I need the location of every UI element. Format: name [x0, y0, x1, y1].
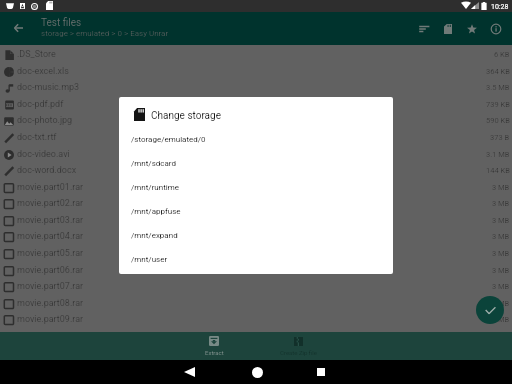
staticText: movie.part05.rar — [17, 248, 84, 259]
staticText: movie.part01.rar — [17, 182, 84, 193]
staticText: doc-video.avi — [17, 149, 70, 160]
staticText: 739 KB — [486, 100, 510, 109]
staticText: Create Zip file — [280, 349, 317, 356]
button[interactable]: Back — [177, 360, 201, 384]
button[interactable]: Extract — [172, 332, 256, 360]
staticText: 3 MB — [492, 282, 510, 291]
staticText: /mnt/user — [131, 255, 168, 264]
button[interactable]: .DS_Store — [0, 46, 512, 63]
staticText: /mnt/expand — [131, 231, 178, 240]
button[interactable]: doc-excel.xls — [0, 63, 512, 80]
staticText: 3.1 MB — [486, 150, 510, 159]
button[interactable]: movie.part02.rar — [0, 195, 512, 212]
staticText: 3 MB — [492, 199, 510, 208]
button[interactable]: Home — [245, 360, 269, 384]
staticText: movie.part07.rar — [17, 281, 84, 292]
button[interactable]: movie.part04.rar — [0, 228, 512, 245]
staticText: 10:28 — [491, 3, 509, 11]
button[interactable]: Info — [484, 14, 508, 44]
button[interactable]: /storage/emulated/0 — [119, 127, 393, 151]
button[interactable]: doc-photo.jpg — [0, 112, 512, 129]
staticText: movie.part09.rar — [17, 314, 84, 325]
button[interactable]: Back — [6, 16, 30, 40]
staticText: 3.5 MB — [486, 83, 510, 92]
button[interactable]: doc-pdf.pdf — [0, 96, 512, 113]
button[interactable]: doc-music.mp3 — [0, 79, 512, 96]
staticText: 3 MB — [492, 216, 510, 225]
button[interactable]: Confirm selection — [476, 296, 504, 324]
staticText: .DS_Store — [17, 49, 56, 60]
staticText: movie.part08.rar — [17, 298, 84, 309]
staticText: 3 MB — [492, 232, 510, 241]
staticText: Extract — [205, 349, 224, 356]
staticText: 3 MB — [492, 315, 510, 324]
staticText: doc-photo.jpg — [17, 115, 73, 126]
button[interactable]: /mnt/sdcard — [119, 151, 393, 175]
button[interactable]: movie.part01.rar — [0, 179, 512, 196]
button[interactable]: Sort — [412, 14, 436, 44]
staticText: /mnt/sdcard — [131, 159, 176, 168]
staticText: /mnt/runtime — [131, 183, 180, 192]
staticText: 6 KB — [494, 50, 510, 59]
staticText: movie.part04.rar — [17, 231, 84, 242]
staticText: 364 KB — [486, 67, 510, 76]
button[interactable]: movie.part09.rar — [0, 311, 512, 328]
staticText: 3 MB — [492, 249, 510, 258]
staticText: movie.part02.rar — [17, 198, 84, 209]
button[interactable]: Create Zip file — [256, 332, 340, 360]
button[interactable]: Recent apps — [309, 360, 333, 384]
button[interactable]: movie.part07.rar — [0, 278, 512, 295]
staticText: /mnt/appfuse — [131, 207, 181, 216]
staticText: 3 MB — [492, 299, 510, 308]
staticText: 3 MB — [492, 266, 510, 275]
staticText: doc-pdf.pdf — [17, 99, 64, 110]
staticText: 373 B — [490, 133, 510, 142]
staticText: doc-music.mp3 — [17, 82, 80, 93]
button[interactable]: Change storage — [436, 14, 460, 44]
staticText: doc-txt.rtf — [17, 132, 57, 143]
button[interactable]: doc-txt.rtf — [0, 129, 512, 146]
staticText: movie.part06.rar — [17, 265, 84, 276]
button[interactable]: movie.part06.rar — [0, 262, 512, 279]
staticText: 144 KB — [486, 166, 510, 175]
staticText: movie.part03.rar — [17, 215, 84, 226]
staticText: 590 KB — [486, 116, 510, 125]
button[interactable]: /mnt/expand — [119, 223, 393, 247]
staticText: Test files — [41, 17, 82, 29]
button[interactable]: /mnt/appfuse — [119, 199, 393, 223]
button[interactable]: doc-video.avi — [0, 146, 512, 163]
button[interactable]: Favorites — [460, 14, 484, 44]
button[interactable]: movie.part03.rar — [0, 212, 512, 229]
button[interactable]: doc-word.docx — [0, 162, 512, 179]
staticText: doc-word.docx — [17, 165, 77, 176]
button[interactable]: /mnt/runtime — [119, 175, 393, 199]
staticText: 3 MB — [492, 183, 510, 192]
button[interactable]: movie.part08.rar — [0, 295, 512, 312]
button[interactable]: /mnt/user — [119, 247, 393, 271]
staticText: Change storage — [151, 110, 221, 122]
staticText: /storage/emulated/0 — [131, 135, 206, 144]
button[interactable]: movie.part05.rar — [0, 245, 512, 262]
staticText: storage > emulated > 0 > Easy Unrar — [41, 29, 169, 38]
staticText: doc-excel.xls — [17, 66, 69, 77]
